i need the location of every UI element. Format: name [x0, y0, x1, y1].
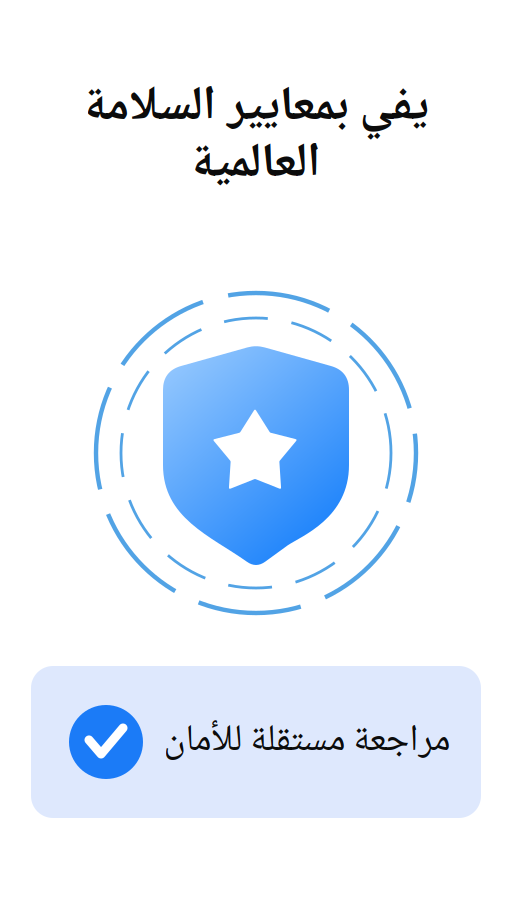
staticText: يفي بمعايير السلامة [84, 68, 428, 149]
staticText: العالمية [191, 124, 320, 206]
staticText: مراجعة مستقلة للأمان [163, 710, 450, 774]
button[interactable]: مراجعة مستقلة للأمان [31, 666, 481, 818]
